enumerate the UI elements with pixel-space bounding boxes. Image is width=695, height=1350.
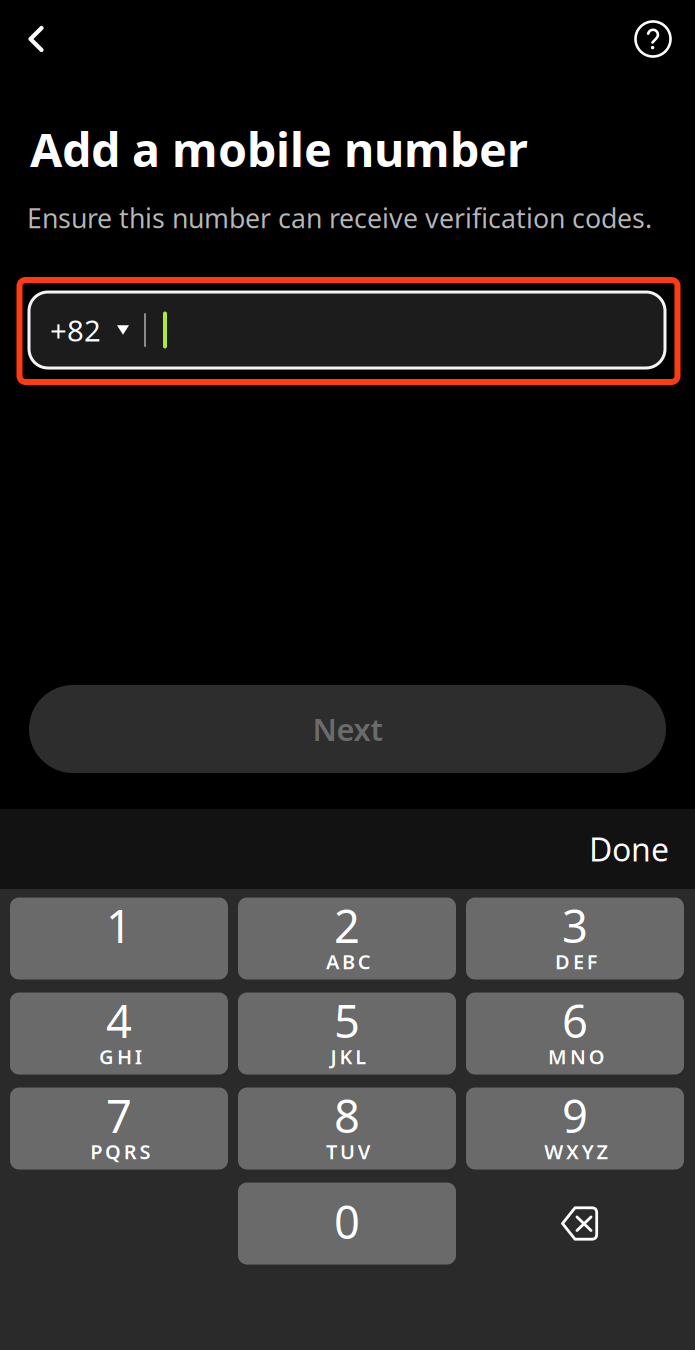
staticText: 3	[562, 895, 588, 956]
button[interactable]: 9	[466, 1087, 684, 1169]
staticText: 9	[562, 1085, 588, 1146]
staticText: 2	[334, 895, 360, 956]
staticText: TUV	[326, 1138, 371, 1165]
button[interactable]: 3	[466, 897, 684, 979]
staticText: Add a mobile number	[30, 118, 528, 180]
staticText: GHI	[99, 1043, 142, 1070]
staticText: 8	[334, 1085, 360, 1146]
staticText: Ensure this number can receive verificat…	[27, 200, 652, 236]
staticText: 7	[106, 1085, 132, 1146]
button[interactable]: 8	[238, 1087, 456, 1169]
staticText: 0	[334, 1191, 360, 1252]
button[interactable]: Help	[625, 11, 681, 67]
staticText: WXYZ	[544, 1138, 609, 1165]
staticText: ABC	[326, 948, 371, 975]
button[interactable]: 6	[466, 992, 684, 1074]
staticText: JKL	[331, 1043, 366, 1070]
button[interactable]: Done	[569, 818, 669, 880]
staticText: 6	[562, 990, 588, 1051]
staticText: Done	[589, 828, 669, 870]
button[interactable]: Delete	[466, 1182, 684, 1264]
button[interactable]: 4	[10, 992, 228, 1074]
staticText: DEF	[555, 948, 598, 975]
button[interactable]: 7	[10, 1087, 228, 1169]
button[interactable]: Back	[8, 11, 64, 67]
button[interactable]: 2	[238, 897, 456, 979]
staticText: Next	[312, 709, 382, 749]
button[interactable]: 1	[10, 897, 228, 979]
button[interactable]: 5	[238, 992, 456, 1074]
button[interactable]: 0	[238, 1182, 456, 1264]
staticText: +82	[50, 310, 101, 349]
staticText: 4	[106, 990, 132, 1051]
staticText: 5	[334, 990, 360, 1051]
button[interactable]: +82	[29, 292, 665, 368]
staticText: 1	[106, 895, 132, 956]
button[interactable]: Next	[29, 685, 666, 773]
staticText: PQRS	[90, 1138, 151, 1165]
staticText: MNO	[548, 1043, 605, 1070]
